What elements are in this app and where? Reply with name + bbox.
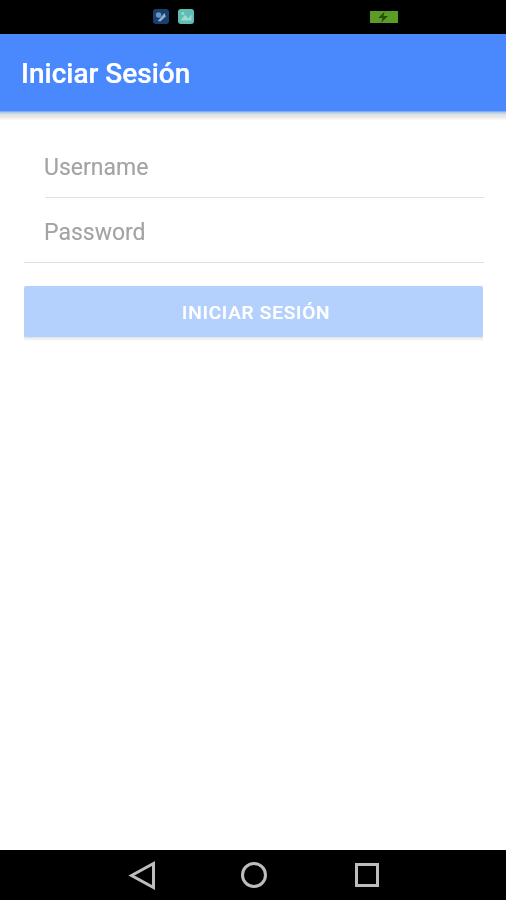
staticText: Password [44, 219, 146, 246]
button[interactable]: Home [230, 851, 278, 899]
button[interactable]: Back [118, 851, 166, 899]
button[interactable]: Password [24, 198, 484, 263]
staticText: Username [44, 154, 149, 181]
staticText: INICIAR SESIÓN [182, 301, 331, 323]
staticText: Iniciar Sesión [21, 57, 191, 90]
button[interactable]: Recent apps [343, 851, 391, 899]
button[interactable]: Username [45, 133, 484, 198]
button[interactable]: INICIAR SESIÓN [24, 286, 483, 337]
